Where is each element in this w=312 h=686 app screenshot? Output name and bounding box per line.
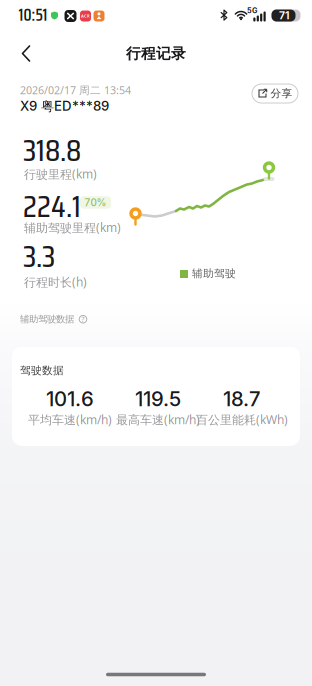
staticText: ACR (81, 13, 90, 19)
staticText: 18.7 (223, 387, 261, 411)
button[interactable]: 辅助驾驶数据说明 (78, 314, 88, 324)
staticText: 318.8 (23, 125, 81, 175)
staticText: 行程时长(h) (24, 274, 87, 290)
staticText: 3.3 (23, 231, 55, 281)
staticText: 最高车速(km/h) (116, 411, 200, 427)
staticText: 驾驶数据 (20, 364, 64, 377)
staticText: 百公里能耗(kWh) (196, 411, 288, 427)
staticText: 行程记录 (126, 44, 186, 62)
staticText: X9 粤ED***89 (20, 98, 109, 115)
staticText: 辅助驾驶数据 (20, 313, 74, 325)
staticText: 224.1 (23, 181, 81, 231)
staticText: 5G (247, 6, 258, 15)
staticText: 2026/02/17 周二 13:54 (20, 83, 131, 97)
staticText: 辅助驾驶里程(km) (24, 219, 121, 235)
staticText: 辅助驾驶 (192, 267, 236, 280)
button[interactable]: 返回 (11, 38, 41, 68)
staticText: 71 (279, 9, 289, 22)
button[interactable]: 分享 (252, 84, 298, 103)
staticText: 行驶里程(km) (24, 166, 97, 182)
staticText: ? (81, 315, 84, 324)
staticText: 10:51 (18, 2, 47, 28)
staticText: 分享 (270, 87, 292, 100)
staticText: 70% (84, 196, 106, 209)
staticText: 119.5 (135, 387, 181, 411)
staticText: 101.6 (46, 387, 94, 411)
staticText: 平均车速(km/h) (28, 411, 112, 427)
